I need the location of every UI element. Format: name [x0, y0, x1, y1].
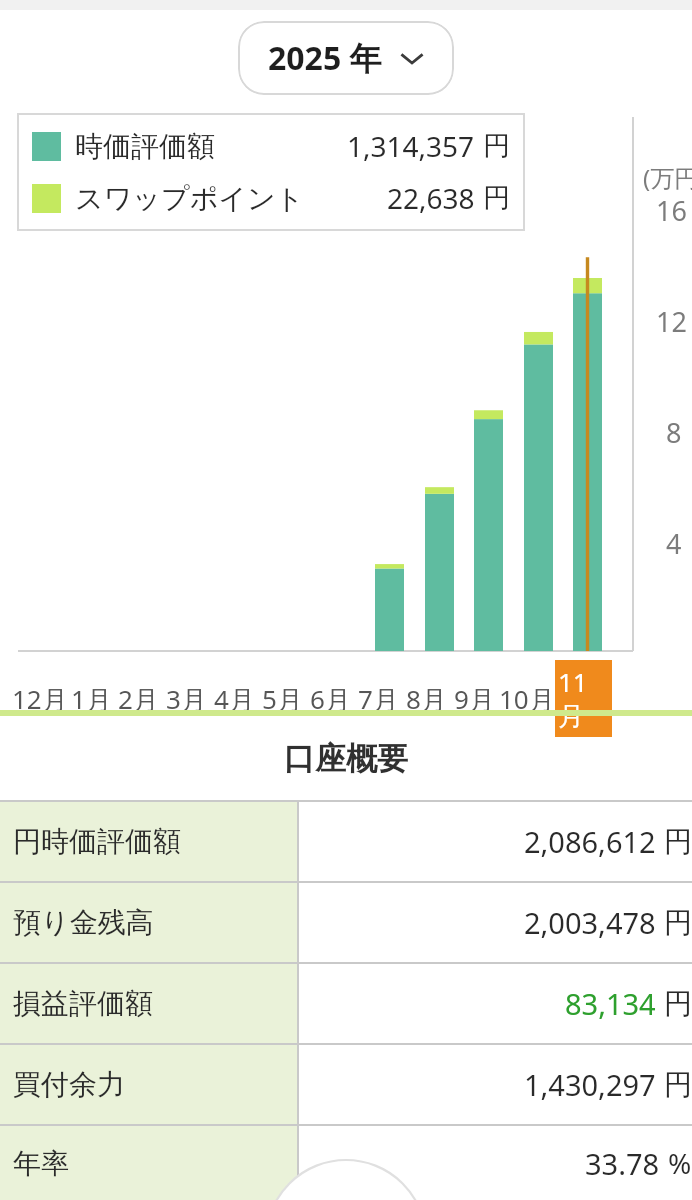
- staticText: 口座概要: [284, 739, 408, 778]
- staticText: 1,430,297: [524, 1065, 656, 1104]
- staticText: 11月: [558, 664, 609, 733]
- staticText: 預り金残高: [13, 905, 154, 940]
- staticText: 6月: [310, 681, 351, 717]
- button[interactable]: 5月: [258, 681, 306, 717]
- staticText: 8: [666, 414, 682, 451]
- button[interactable]: 10月: [498, 681, 555, 717]
- button[interactable]: 円時価評価額: [0, 802, 692, 881]
- button[interactable]: 9月: [450, 681, 498, 717]
- staticText: 2月: [118, 681, 159, 717]
- staticText: 円: [483, 129, 510, 163]
- staticText: 10月: [499, 681, 555, 717]
- staticText: 1,314,357: [347, 127, 475, 165]
- staticText: 買付余力: [13, 1067, 125, 1102]
- staticText: 16: [656, 192, 687, 229]
- staticText: 22,638: [387, 179, 475, 217]
- staticText: 12: [656, 303, 687, 340]
- button[interactable]: 預り金残高: [0, 883, 692, 962]
- staticText: 12月: [12, 681, 68, 717]
- button[interactable]: 4月: [210, 681, 258, 717]
- button[interactable]: 損益評価額: [0, 964, 692, 1043]
- staticText: 4: [666, 525, 682, 562]
- staticText: (万円: [643, 161, 692, 194]
- staticText: 9月: [454, 681, 495, 717]
- staticText: 円: [664, 905, 692, 940]
- staticText: 円: [664, 986, 692, 1021]
- button[interactable]: 2月: [115, 681, 162, 717]
- staticText: 時価評価額: [75, 129, 215, 164]
- staticText: スワップポイント: [75, 181, 305, 216]
- staticText: 3月: [166, 681, 207, 717]
- button[interactable]: 11月: [555, 660, 612, 737]
- staticText: 2,003,478: [524, 903, 656, 942]
- staticText: 83,134: [565, 984, 656, 1023]
- staticText: 1月: [71, 681, 112, 717]
- button[interactable]: 1月: [68, 681, 115, 717]
- staticText: 円時価評価額: [13, 824, 181, 859]
- button[interactable]: 2025 年: [238, 21, 454, 95]
- staticText: 5月: [262, 681, 303, 717]
- staticText: 円: [664, 824, 692, 859]
- staticText: 円: [483, 181, 510, 215]
- staticText: 円: [664, 1067, 692, 1102]
- button[interactable]: 年率: [0, 1126, 692, 1200]
- staticText: 4月: [214, 681, 255, 717]
- button[interactable]: 3月: [162, 681, 210, 717]
- staticText: 7月: [358, 681, 399, 717]
- staticText: 8月: [406, 681, 447, 717]
- button[interactable]: 6月: [306, 681, 354, 717]
- button[interactable]: 8月: [402, 681, 450, 717]
- staticText: 2,086,612: [524, 822, 656, 861]
- button[interactable]: 買付余力: [0, 1045, 692, 1124]
- staticText: 年率: [13, 1146, 69, 1181]
- staticText: %: [668, 1144, 692, 1182]
- staticText: 33.78: [585, 1144, 660, 1183]
- button[interactable]: 12月: [12, 681, 68, 717]
- button[interactable]: 7月: [354, 681, 402, 717]
- staticText: 損益評価額: [13, 986, 153, 1021]
- staticText: 2025 年: [268, 36, 382, 80]
